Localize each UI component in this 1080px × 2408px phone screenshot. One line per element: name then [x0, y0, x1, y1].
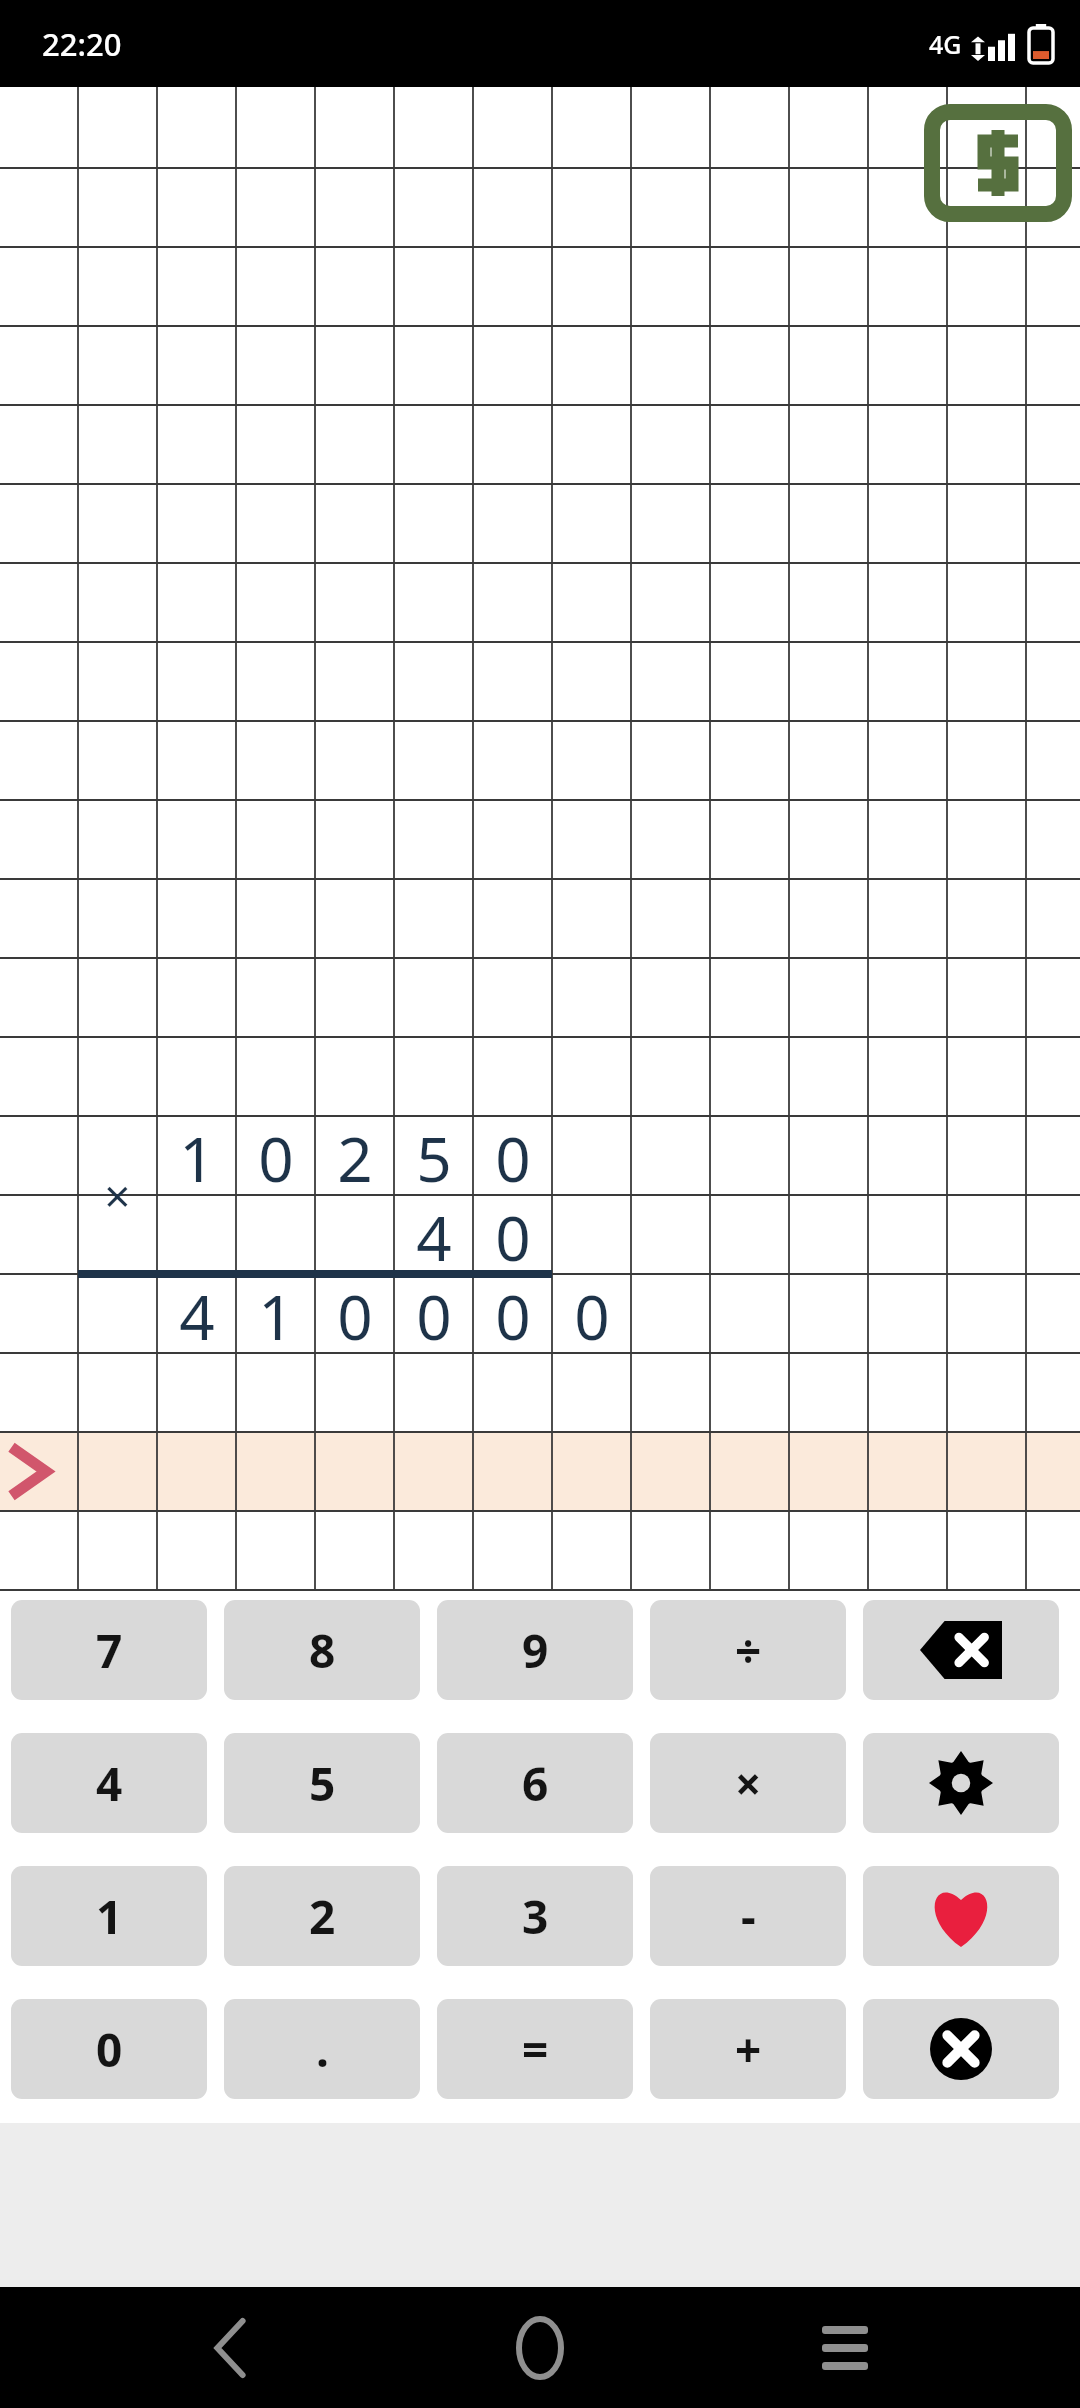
- staticText: 0: [574, 1274, 610, 1353]
- button[interactable]: -: [650, 1866, 846, 1966]
- staticText: 0: [495, 1195, 531, 1274]
- staticText: 0: [495, 1274, 531, 1353]
- staticText: 9: [522, 1619, 549, 1682]
- staticText: 4G: [929, 27, 962, 61]
- button[interactable]: .: [224, 1999, 420, 2099]
- staticText: 2: [337, 1116, 373, 1195]
- button[interactable]: Settings: [863, 1733, 1059, 1833]
- button[interactable]: 0: [11, 1999, 207, 2099]
- staticText: ÷: [735, 1619, 762, 1682]
- button[interactable]: 5: [224, 1733, 420, 1833]
- button[interactable]: Backspace: [863, 1600, 1059, 1700]
- staticText: 0: [495, 1116, 531, 1195]
- button[interactable]: 4: [11, 1733, 207, 1833]
- button[interactable]: Recent apps: [800, 2303, 890, 2393]
- staticText: 5: [309, 1752, 336, 1815]
- staticText: 5: [416, 1116, 452, 1195]
- staticText: 22:20: [42, 23, 122, 65]
- staticText: 4: [179, 1274, 215, 1353]
- staticText: .: [316, 2018, 329, 2081]
- button[interactable]: 7: [11, 1600, 207, 1700]
- button[interactable]: Home: [495, 2303, 585, 2393]
- button[interactable]: Back: [185, 2303, 275, 2393]
- staticText: ×: [735, 1752, 762, 1815]
- button[interactable]: ÷: [650, 1600, 846, 1700]
- staticText: 6: [522, 1752, 549, 1815]
- staticText: =: [522, 2018, 549, 2081]
- staticText: 4: [96, 1752, 123, 1815]
- button[interactable]: 1: [11, 1866, 207, 1966]
- staticText: 3: [522, 1885, 549, 1948]
- button[interactable]: Close: [863, 1999, 1059, 2099]
- staticText: 0: [416, 1274, 452, 1353]
- staticText: ×: [104, 1164, 131, 1227]
- staticText: 7: [96, 1619, 123, 1682]
- button[interactable]: 8: [224, 1600, 420, 1700]
- button[interactable]: 9: [437, 1600, 633, 1700]
- staticText: 4: [416, 1195, 452, 1274]
- button[interactable]: 3: [437, 1866, 633, 1966]
- staticText: +: [735, 2018, 762, 2081]
- button[interactable]: Favourite: [863, 1866, 1059, 1966]
- button[interactable]: 2: [224, 1866, 420, 1966]
- button[interactable]: ×: [650, 1733, 846, 1833]
- staticText: 1: [258, 1274, 294, 1353]
- staticText: 0: [96, 2018, 123, 2081]
- staticText: 1: [179, 1116, 215, 1195]
- staticText: 0: [337, 1274, 373, 1353]
- button[interactable]: =: [437, 1999, 633, 2099]
- staticText: 1: [96, 1885, 123, 1948]
- staticText: -: [741, 1885, 756, 1948]
- staticText: 2: [309, 1885, 336, 1948]
- staticText: 0: [258, 1116, 294, 1195]
- staticText: 8: [309, 1619, 336, 1682]
- button[interactable]: 6: [437, 1733, 633, 1833]
- button[interactable]: +: [650, 1999, 846, 2099]
